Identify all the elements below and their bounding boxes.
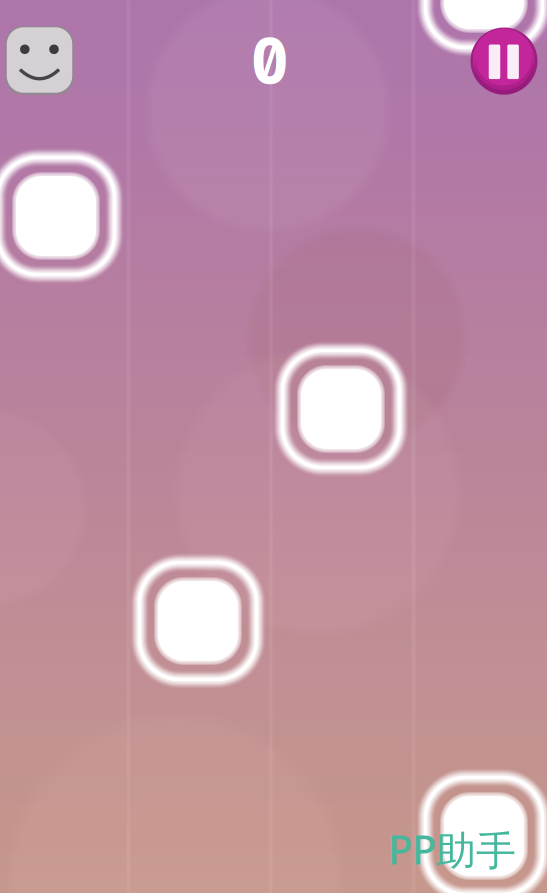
staticText: PP助手 [388, 822, 516, 876]
staticText: 0 [251, 16, 288, 101]
button[interactable]: Character [5, 26, 74, 95]
button[interactable]: Pause [470, 27, 537, 94]
